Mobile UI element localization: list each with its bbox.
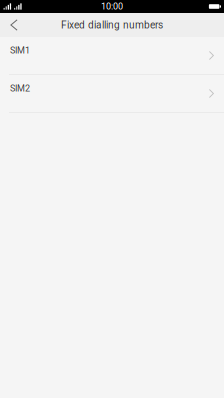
- staticText: SIM1: [10, 45, 30, 56]
- staticText: 10:00: [101, 1, 123, 12]
- button[interactable]: Back: [2, 13, 26, 37]
- staticText: Fixed dialling numbers: [61, 19, 163, 31]
- button[interactable]: SIM1: [0, 37, 224, 74]
- button[interactable]: SIM2: [0, 75, 224, 112]
- staticText: SIM2: [10, 83, 30, 94]
